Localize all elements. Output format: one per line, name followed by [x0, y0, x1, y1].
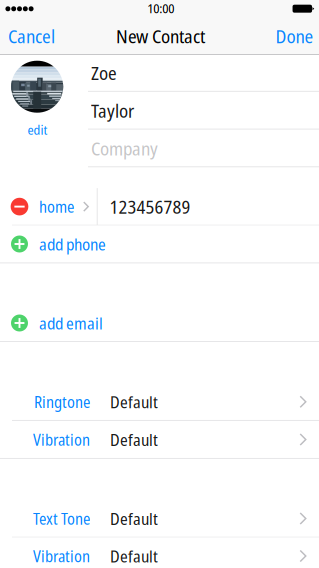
staticText: add phone	[39, 233, 106, 255]
staticText: Company	[91, 135, 158, 161]
button[interactable]: Vibration	[0, 421, 319, 458]
staticText: Default	[110, 507, 158, 530]
button[interactable]: add phone	[0, 225, 319, 262]
button[interactable]: Cancel	[8, 19, 78, 53]
staticText: 123456789	[109, 194, 190, 219]
staticText: add email	[39, 312, 103, 334]
button[interactable]: Vibration	[0, 537, 319, 568]
staticText: Zoe	[91, 60, 117, 85]
staticText: Done	[275, 23, 313, 49]
staticText: Vibration	[33, 545, 90, 567]
staticText: Taylor	[91, 98, 134, 123]
staticText: Ringtone	[34, 391, 90, 413]
staticText: edit	[27, 120, 47, 139]
button[interactable]: Done	[253, 19, 313, 53]
staticText: Default	[110, 390, 158, 413]
button[interactable]: Ringtone	[0, 383, 319, 420]
staticText: 10:00	[147, 0, 174, 17]
staticText: Default	[110, 428, 158, 451]
staticText: Default	[110, 545, 158, 567]
button[interactable]: add email	[0, 304, 319, 341]
button[interactable]: Text Tone	[0, 500, 319, 537]
staticText: New Contact	[116, 23, 205, 49]
staticText: home	[39, 196, 74, 217]
staticText: Text Tone	[33, 508, 90, 529]
button[interactable]: home	[0, 188, 319, 225]
button[interactable]: edit	[14, 120, 60, 138]
staticText: Vibration	[33, 429, 90, 450]
staticText: Cancel	[8, 23, 55, 49]
